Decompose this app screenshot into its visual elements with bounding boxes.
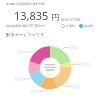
staticText: 配当ポートフォリオ xyxy=(6,32,45,37)
staticText: 年間配当金額(税引後)(予想) xyxy=(6,2,45,6)
staticText: 13,835 xyxy=(14,8,49,23)
button[interactable]: 配当ポートフォリオ円グラフ xyxy=(4,38,96,100)
button[interactable]: 13,835 xyxy=(4,8,96,23)
staticText: 円 xyxy=(51,12,59,22)
staticText: (取得金額評価額 157,462 円) xyxy=(6,24,45,28)
staticText: 評価額 xyxy=(66,24,75,28)
button[interactable]: 評価額 xyxy=(60,24,76,28)
staticText: (年利 3.79%) xyxy=(61,17,81,22)
button[interactable]: 取得額 xyxy=(78,24,94,28)
staticText: 取得額 xyxy=(84,24,93,28)
